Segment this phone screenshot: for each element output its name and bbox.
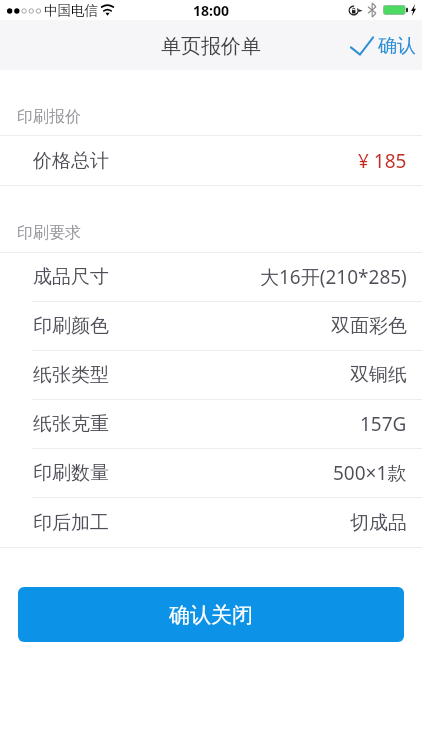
staticText: ¥ 185 <box>358 148 407 174</box>
staticText: 印刷数量 <box>33 461 109 485</box>
staticText: 确认 <box>378 34 416 58</box>
staticText: 单页报价单 <box>161 34 261 59</box>
button[interactable]: 纸张类型 <box>0 351 422 400</box>
button[interactable]: 印刷颜色 <box>0 302 422 351</box>
staticText: 18:00 <box>193 1 229 20</box>
staticText: 中国电信 <box>44 2 98 19</box>
staticText: 纸张克重 <box>33 412 109 436</box>
staticText: 双面彩色 <box>331 314 407 338</box>
staticText: 157G <box>360 411 407 437</box>
button[interactable]: 纸张克重 <box>0 400 422 449</box>
button[interactable]: 确认 <box>350 20 422 70</box>
button[interactable]: 印刷数量 <box>0 449 422 498</box>
button[interactable]: 价格总计 <box>0 136 422 185</box>
staticText: 成品尺寸 <box>33 265 109 289</box>
staticText: 印刷报价 <box>17 107 81 127</box>
staticText: 印刷要求 <box>17 223 81 243</box>
staticText: 纸张类型 <box>33 363 109 387</box>
staticText: 500×1款 <box>333 460 407 486</box>
staticText: 印刷颜色 <box>33 314 109 338</box>
button[interactable]: 印后加工 <box>0 498 422 547</box>
staticText: 价格总计 <box>33 149 109 173</box>
staticText: 确认关闭 <box>169 602 253 628</box>
staticText: 印后加工 <box>33 511 109 535</box>
staticText: 双铜纸 <box>350 363 407 387</box>
button[interactable]: 成品尺寸 <box>0 253 422 302</box>
button[interactable]: 确认关闭 <box>18 587 404 642</box>
staticText: 大16开(210*285) <box>260 264 407 290</box>
staticText: 切成品 <box>350 511 407 535</box>
